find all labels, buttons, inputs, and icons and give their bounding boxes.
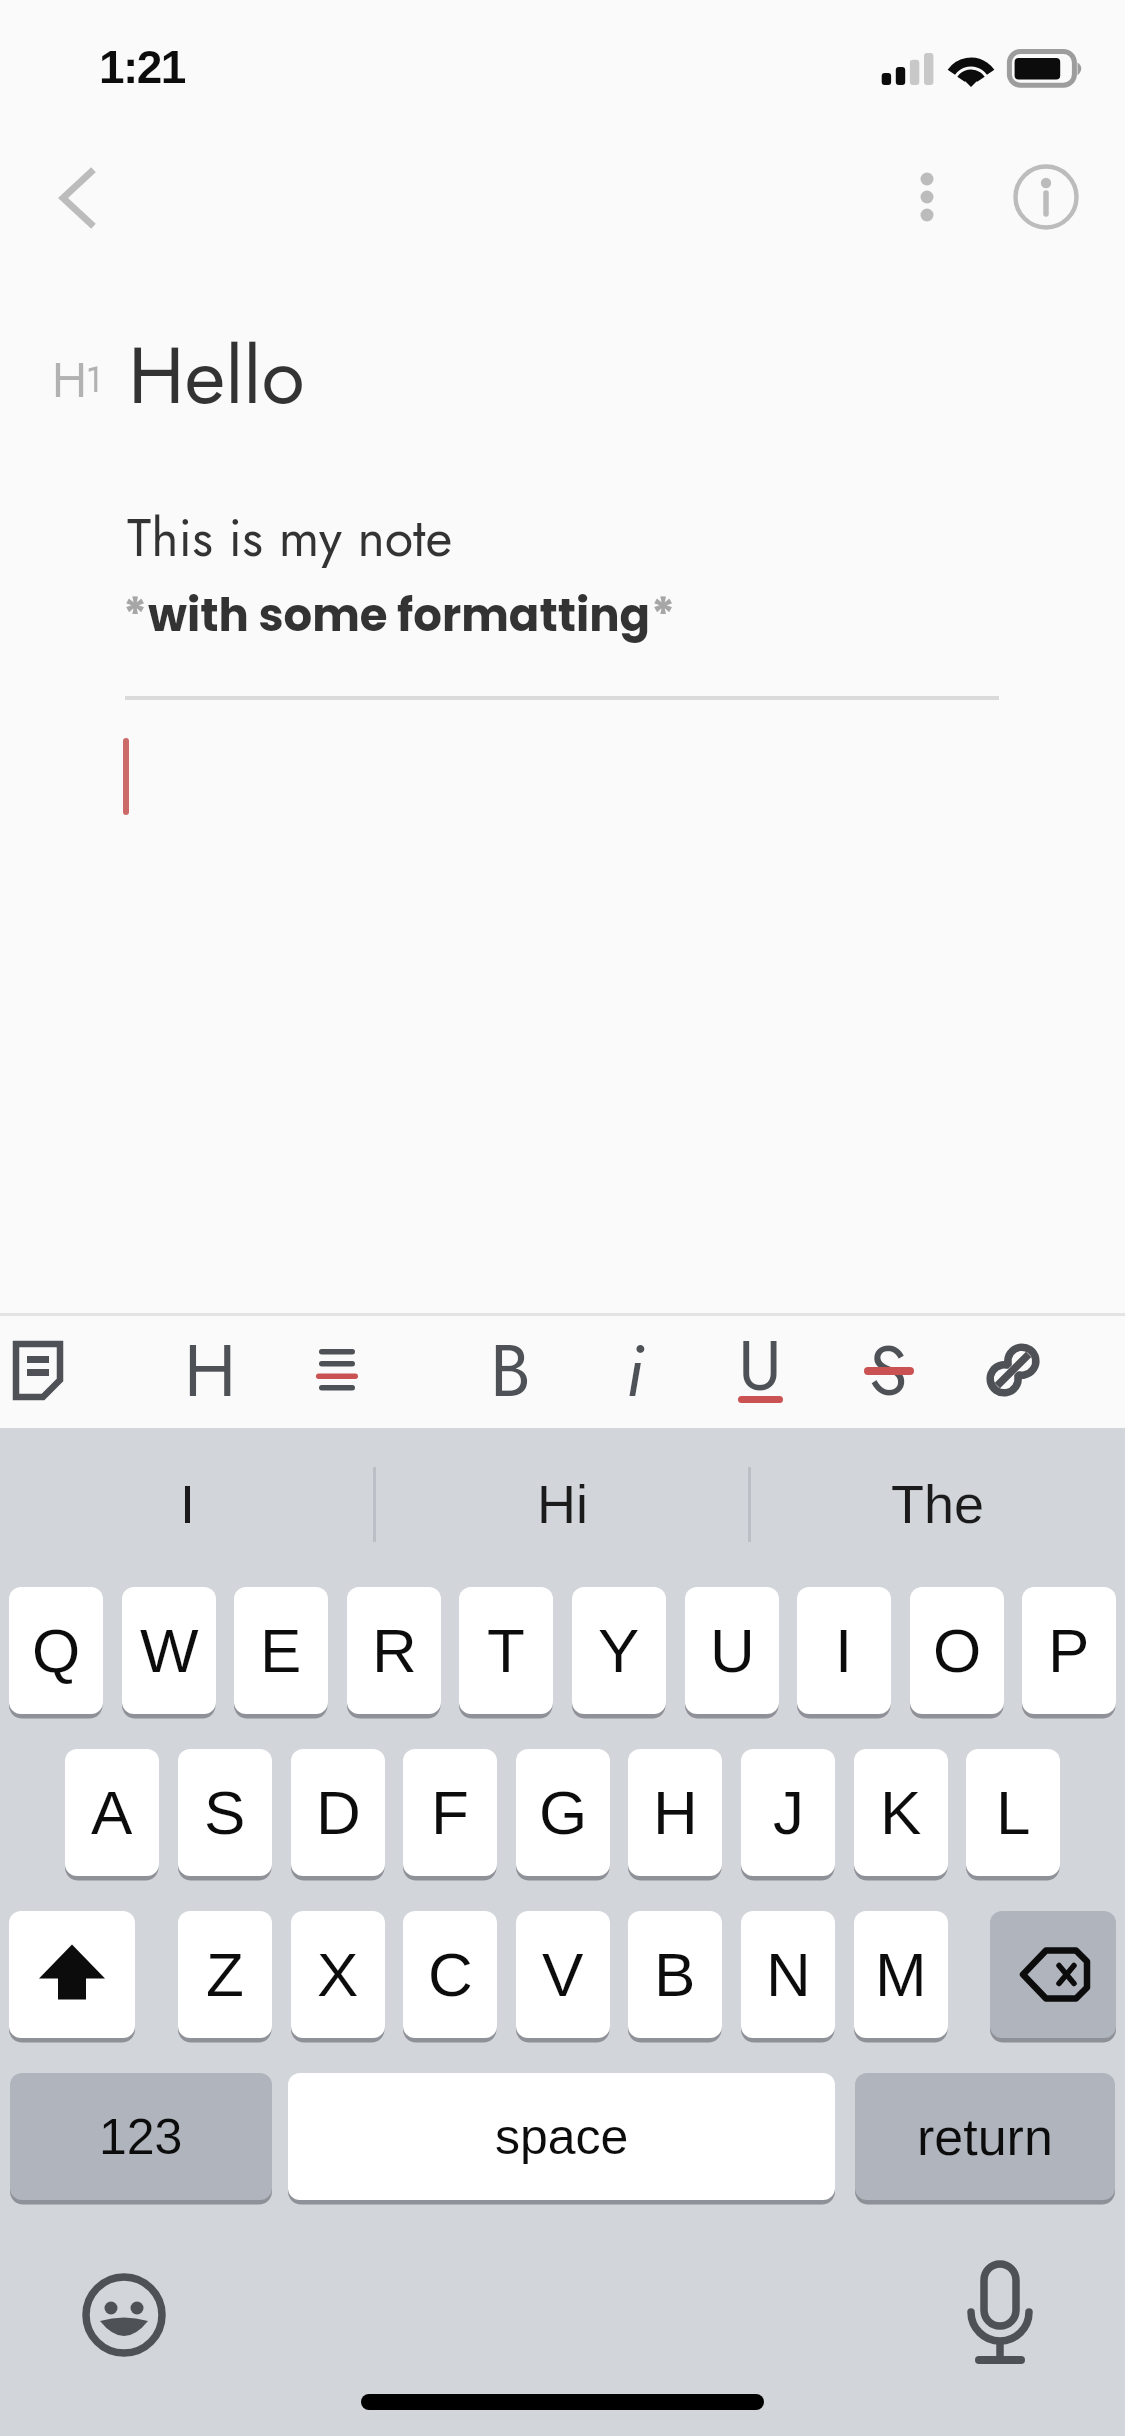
button[interactable]: E [234,1587,328,1714]
staticText: return [917,2108,1053,2166]
staticText: S [869,1320,908,1421]
staticText: I [835,1616,853,1685]
button[interactable]: B [628,1911,722,2038]
button[interactable]: More options [872,142,982,252]
button[interactable]: Hi [375,1428,750,1578]
staticText: Hi [537,1474,588,1534]
button[interactable]: List style [281,1314,393,1426]
staticText: This is my note [127,500,453,575]
staticText: Z [206,1940,244,2009]
button[interactable]: M [854,1911,948,2038]
staticText: H [184,1318,237,1423]
button[interactable]: Italic [578,1314,690,1426]
button[interactable]: Insert link [957,1314,1069,1426]
staticText: J [773,1778,804,1847]
staticText: W [140,1616,199,1685]
staticText: A [91,1778,133,1847]
button[interactable]: Note text [0,290,1125,1310]
staticText: * [651,584,676,647]
button[interactable]: F [403,1749,497,1876]
button[interactable]: W [122,1587,216,1714]
button[interactable]: Heading [154,1314,266,1426]
staticText: Y [598,1616,640,1685]
staticText: Q [32,1616,81,1685]
button[interactable]: Underline [704,1314,816,1426]
button[interactable]: K [854,1749,948,1876]
button[interactable]: G [516,1749,610,1876]
button[interactable]: Bold [454,1314,566,1426]
button[interactable]: O [910,1587,1004,1714]
staticText: B [654,1940,696,2009]
button[interactable]: 123 [10,2073,272,2200]
staticText: B [490,1318,531,1423]
button[interactable]: Dictation [948,2260,1052,2370]
button[interactable]: space [288,2073,835,2200]
button[interactable]: V [516,1911,610,2038]
staticText: I [180,1474,196,1534]
staticText: C [428,1940,473,2009]
staticText: L [996,1778,1031,1847]
staticText: E [260,1616,302,1685]
button[interactable]: Strikethrough [832,1314,944,1426]
button[interactable]: S [178,1749,272,1876]
staticText: U [710,1616,755,1685]
staticText: K [880,1778,922,1847]
button[interactable]: L [966,1749,1060,1876]
button[interactable]: Y [572,1587,666,1714]
button[interactable]: H [628,1749,722,1876]
button[interactable]: Shift [9,1911,135,2038]
staticText: 1:21 [99,41,185,92]
staticText: * [123,584,148,647]
button[interactable]: return [855,2073,1115,2200]
staticText: with some formatting [148,584,651,647]
button[interactable]: I [797,1587,891,1714]
staticText: S [204,1778,246,1847]
staticText: M [875,1940,927,2009]
staticText: V [542,1940,584,2009]
staticText: U [738,1315,782,1416]
button[interactable]: D [291,1749,385,1876]
staticText: O [933,1616,982,1685]
staticText: R [372,1616,417,1685]
button[interactable]: P [1022,1587,1116,1714]
staticText: space [495,2109,629,2165]
staticText: H [653,1778,698,1847]
button[interactable]: Q [9,1587,103,1714]
staticText: The [891,1474,985,1534]
staticText: G [539,1778,588,1847]
button[interactable]: J [741,1749,835,1876]
button[interactable]: C [403,1911,497,2038]
button[interactable]: Note style [0,1314,92,1426]
staticText: F [431,1778,469,1847]
button[interactable]: T [459,1587,553,1714]
button[interactable]: X [291,1911,385,2038]
staticText: T [487,1616,525,1685]
staticText: X [317,1940,359,2009]
button[interactable]: A [65,1749,159,1876]
button[interactable]: Z [178,1911,272,2038]
staticText: H [52,345,88,416]
button[interactable]: Emoji keyboard [72,2263,176,2367]
button[interactable]: R [347,1587,441,1714]
button[interactable]: Back [6,143,116,253]
staticText: Hello [128,318,305,432]
button[interactable]: Info [991,142,1101,252]
button[interactable]: Backspace [990,1911,1116,2038]
staticText: 1 [86,355,102,406]
staticText: D [316,1778,361,1847]
button[interactable]: I [0,1428,375,1578]
button[interactable]: The [750,1428,1125,1578]
staticText: P [1048,1616,1090,1685]
button[interactable]: U [685,1587,779,1714]
button[interactable]: N [741,1911,835,2038]
staticText: 123 [99,2109,183,2165]
staticText: i [625,1318,644,1423]
staticText: N [766,1940,811,2009]
